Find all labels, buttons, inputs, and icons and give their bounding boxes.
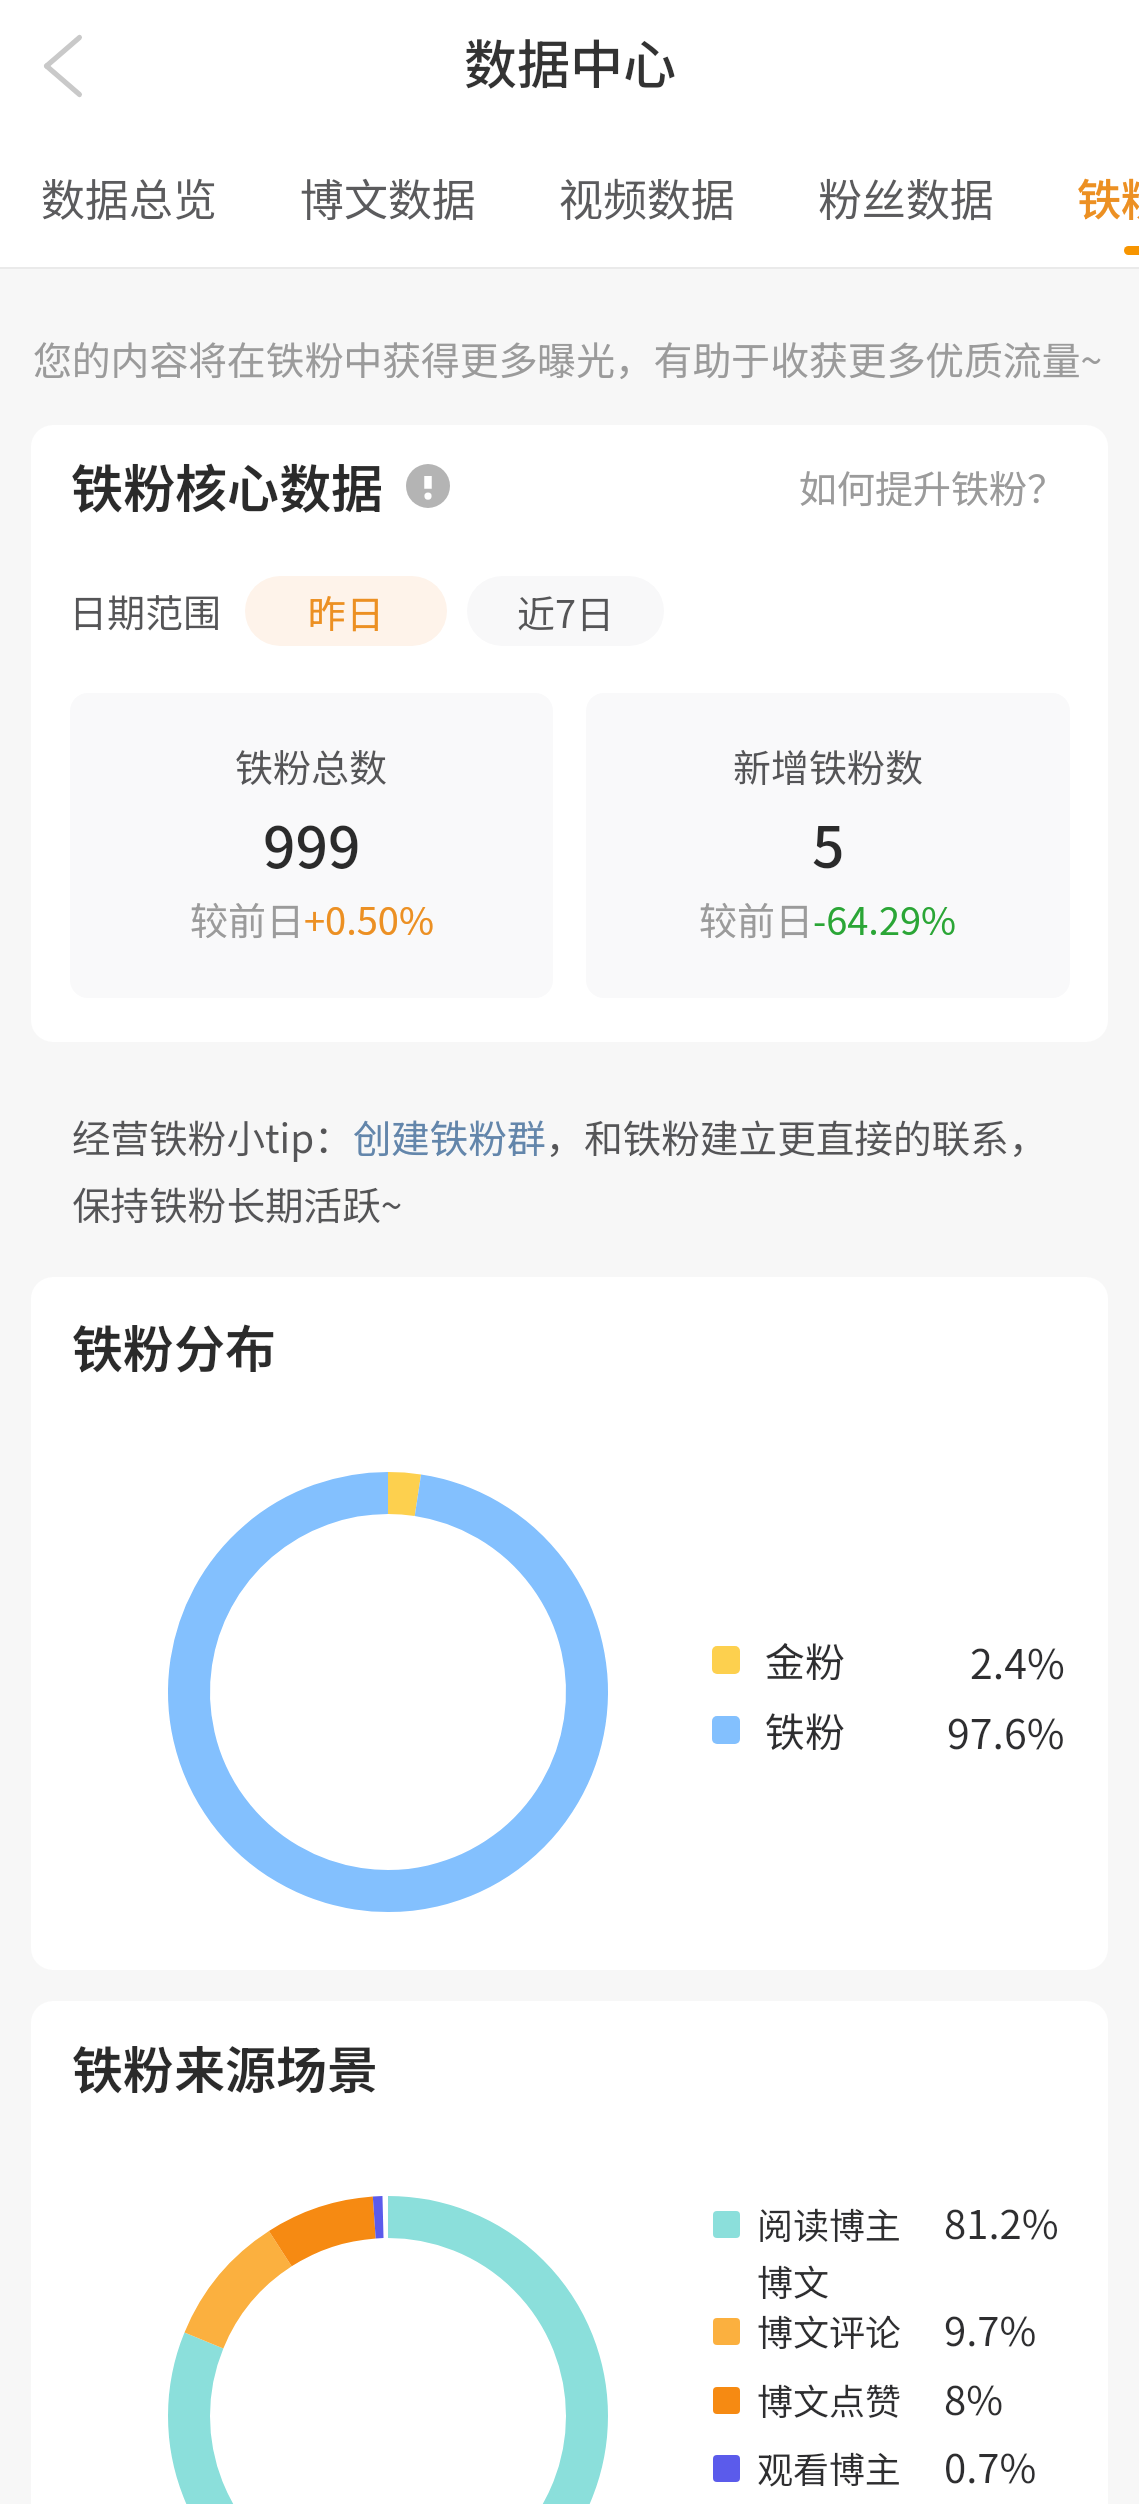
staticText: 粉丝数据 [818, 165, 994, 229]
staticText: 铁粉总数 [235, 738, 388, 793]
button[interactable]: 如何提升铁粉？ [799, 459, 1066, 514]
staticText: 较前日-64.29% [699, 891, 957, 946]
button[interactable]: 视频数据 [559, 165, 735, 229]
staticText: 昨日 [308, 584, 385, 639]
button[interactable]: 近7日 [467, 576, 664, 646]
button[interactable]: 铁粉总数 [70, 693, 553, 998]
staticText: 0.7% [944, 2437, 1037, 2495]
staticText: 铁粉数据 [1077, 165, 1139, 229]
button[interactable]: Back [16, 21, 110, 115]
button[interactable]: 铁粉数据 [1077, 165, 1139, 229]
button[interactable]: 博文数据 [300, 165, 476, 229]
staticText: 近7日 [517, 584, 615, 639]
staticText: 金粉 [765, 1631, 845, 1689]
staticText: 日期范围 [69, 583, 222, 638]
staticText: 博文数据 [300, 165, 476, 229]
button[interactable]: 新增铁粉数 [586, 693, 1070, 998]
button[interactable]: 数据总览 [41, 165, 217, 229]
staticText: 999 [263, 802, 361, 885]
staticText: 8% [944, 2369, 1004, 2427]
button[interactable]: 粉丝数据 [818, 165, 994, 229]
staticText: 9.7% [944, 2300, 1037, 2358]
staticText: 视频数据 [559, 165, 735, 229]
staticText: 您的内容将在铁粉中获得更多曝光，有助于收获更多优质流量~ [33, 330, 1103, 386]
staticText: 81.2% [944, 2193, 1059, 2251]
staticText: 5 [812, 802, 845, 885]
staticText: 博文评论 [757, 2304, 902, 2356]
staticText: 经营铁粉小tip：创建铁粉群，和铁粉建立更直接的联系，保持铁粉长期活跃~ [72, 1108, 1059, 1232]
staticText: 97.6% [947, 1701, 1065, 1760]
staticText: 博文点赞 [757, 2373, 902, 2425]
staticText: 阅读博主 博文 [757, 2197, 902, 2307]
staticText: 较前日+0.50% [190, 891, 434, 946]
staticText: 新增铁粉数 [733, 738, 924, 793]
staticText: 观看博主 视频 [757, 2441, 902, 2504]
staticText: 铁粉 [765, 1701, 845, 1759]
staticText: 2.4% [970, 1631, 1065, 1690]
button[interactable]: Info [406, 464, 450, 508]
staticText: 铁粉分布 [72, 1309, 277, 1383]
staticText: 数据中心 [464, 23, 676, 100]
staticText: 铁粉核心数据 [71, 448, 384, 523]
button[interactable]: 昨日 [245, 576, 447, 646]
staticText: 数据总览 [41, 165, 217, 229]
staticText: 铁粉来源场景 [72, 2030, 379, 2104]
